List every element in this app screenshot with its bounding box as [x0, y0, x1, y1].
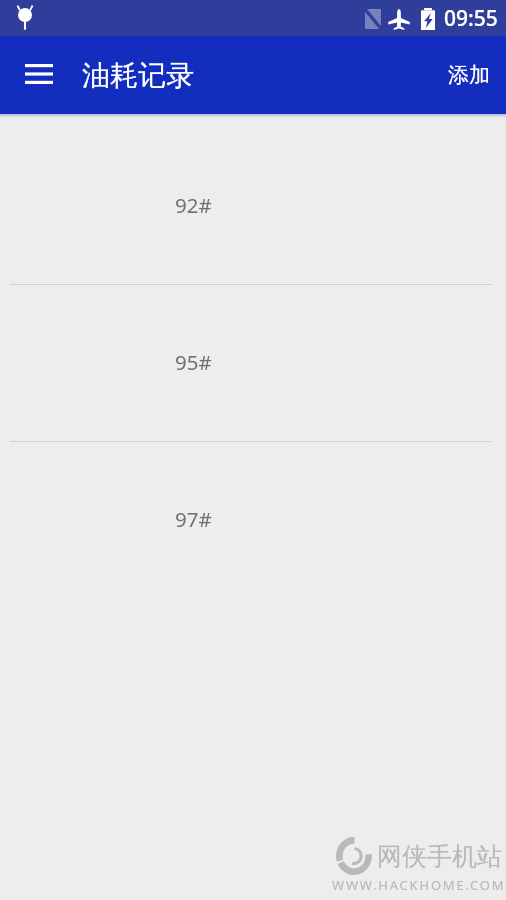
button[interactable]: 95#: [0, 285, 506, 441]
button[interactable]: Menu: [11, 47, 67, 103]
staticText: 添加: [448, 62, 490, 88]
staticText: 95#: [175, 348, 212, 376]
staticText: 97#: [175, 505, 212, 533]
staticText: 09:55: [444, 4, 498, 33]
button[interactable]: 92#: [0, 128, 506, 284]
button[interactable]: 97#: [0, 442, 506, 598]
button[interactable]: 添加: [440, 48, 498, 102]
staticText: 油耗记录: [82, 58, 194, 93]
staticText: 网侠手机站: [377, 841, 502, 872]
staticText: 92#: [175, 191, 212, 219]
staticText: WWW.HACKHOME.COM: [332, 876, 506, 894]
